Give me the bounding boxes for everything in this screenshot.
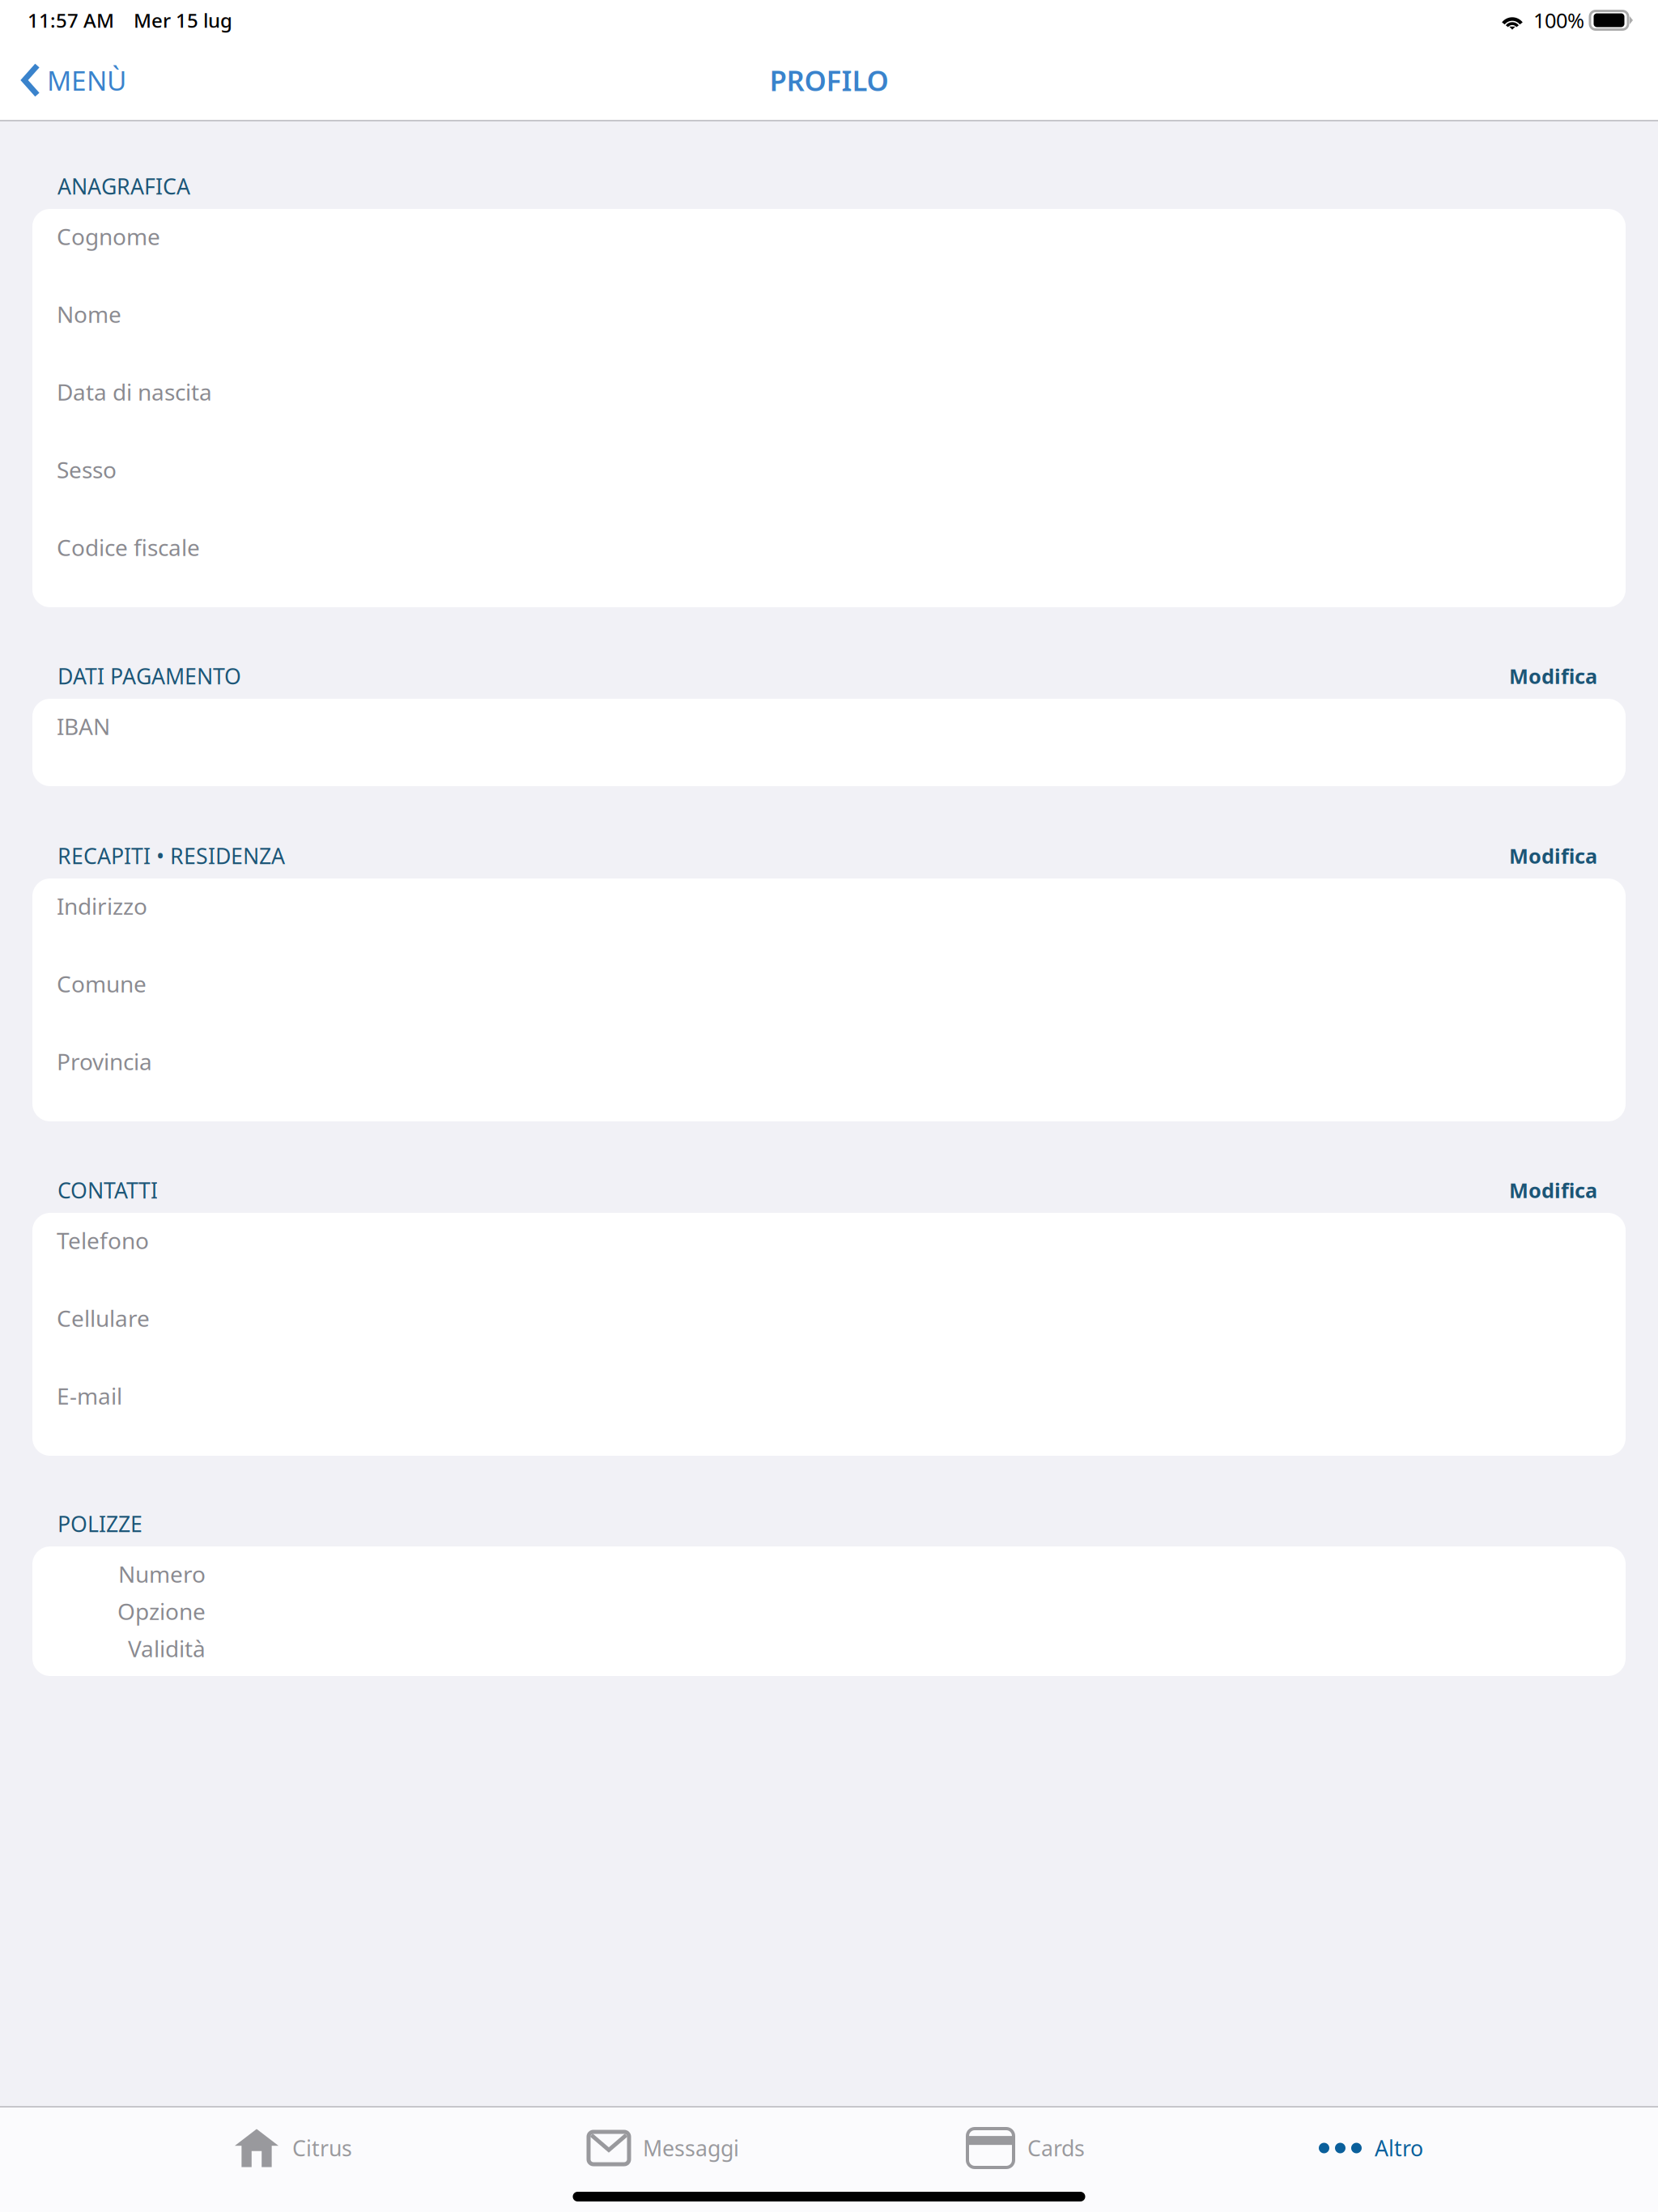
staticText: E-mail bbox=[57, 1381, 122, 1411]
button[interactable]: Modifica bbox=[1493, 1170, 1597, 1210]
staticText: Altro bbox=[1375, 2134, 1423, 2162]
staticText: POLIZZE bbox=[57, 1509, 142, 1538]
staticText: Validità bbox=[128, 1633, 206, 1664]
button[interactable]: Codice fiscale bbox=[32, 520, 1626, 575]
button[interactable]: Cellulare bbox=[32, 1291, 1626, 1346]
staticText: 100% bbox=[1533, 7, 1584, 34]
button[interactable]: IBAN bbox=[32, 699, 1626, 754]
button[interactable]: Numero bbox=[32, 1555, 1626, 1593]
button[interactable]: MENÙ bbox=[0, 40, 141, 120]
staticText: Modifica bbox=[1509, 842, 1597, 869]
button[interactable]: Cards bbox=[967, 2108, 1085, 2189]
staticText: Telefono bbox=[57, 1225, 149, 1255]
staticText: 11:57 AM bbox=[28, 7, 114, 33]
staticText: IBAN bbox=[57, 711, 110, 741]
button[interactable]: Validità bbox=[32, 1630, 1626, 1667]
staticText: Sesso bbox=[57, 455, 117, 485]
button[interactable]: Messaggi bbox=[589, 2108, 739, 2189]
staticText: Numero bbox=[118, 1559, 206, 1589]
button[interactable]: Provincia bbox=[32, 1034, 1626, 1089]
staticText: Modifica bbox=[1509, 662, 1597, 690]
staticText: ANAGRAFICA bbox=[57, 172, 190, 201]
button[interactable]: Opzione bbox=[32, 1593, 1626, 1630]
staticText: Nome bbox=[57, 299, 121, 329]
staticText: Messaggi bbox=[643, 2134, 739, 2162]
staticText: RECAPITI • RESIDENZA bbox=[57, 841, 285, 870]
staticText: Modifica bbox=[1509, 1177, 1597, 1204]
staticText: Data di nascita bbox=[57, 377, 212, 407]
button[interactable]: E-mail bbox=[32, 1368, 1626, 1423]
staticText: Cognome bbox=[57, 221, 160, 251]
staticText: DATI PAGAMENTO bbox=[57, 662, 241, 690]
staticText: Provincia bbox=[57, 1046, 152, 1077]
button[interactable]: Indirizzo bbox=[32, 878, 1626, 934]
staticText: Indirizzo bbox=[57, 891, 147, 921]
button[interactable]: Telefono bbox=[32, 1213, 1626, 1268]
staticText: CONTATTI bbox=[57, 1176, 158, 1205]
button[interactable]: Altro bbox=[1320, 2108, 1423, 2189]
staticText: Cards bbox=[1027, 2134, 1085, 2162]
button[interactable]: Nome bbox=[32, 287, 1626, 342]
staticText: Mer 15 lug bbox=[134, 7, 232, 33]
staticText: Comune bbox=[57, 969, 147, 999]
staticText: MENÙ bbox=[47, 62, 126, 98]
staticText: Citrus bbox=[292, 2134, 352, 2162]
staticText: PROFILO bbox=[769, 62, 889, 99]
button[interactable]: Comune bbox=[32, 956, 1626, 1011]
staticText: Codice fiscale bbox=[57, 532, 200, 562]
button[interactable]: Modifica bbox=[1493, 656, 1597, 696]
button[interactable]: Cognome bbox=[32, 209, 1626, 264]
button[interactable]: Citrus bbox=[235, 2108, 352, 2189]
button[interactable]: Sesso bbox=[32, 442, 1626, 497]
button[interactable]: Data di nascita bbox=[32, 364, 1626, 419]
staticText: Cellulare bbox=[57, 1303, 150, 1333]
staticText: Opzione bbox=[117, 1596, 206, 1626]
button[interactable]: Modifica bbox=[1493, 836, 1597, 876]
